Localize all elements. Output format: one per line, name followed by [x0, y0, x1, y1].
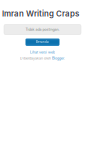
staticText: Imran Writing Craps — [2, 9, 79, 18]
staticText: Beranda — [36, 40, 49, 44]
button[interactable]: Lihat versi web — [30, 50, 55, 54]
staticText: . — [64, 56, 65, 60]
staticText: Diberdayakan oleh — [20, 56, 52, 60]
button[interactable]: Beranda — [25, 38, 59, 46]
staticText: Blogger — [52, 56, 64, 60]
staticText: Lihat versi web — [30, 50, 55, 54]
button[interactable]: Blogger — [52, 56, 64, 60]
staticText: Tidak ada postingan. — [25, 27, 59, 32]
